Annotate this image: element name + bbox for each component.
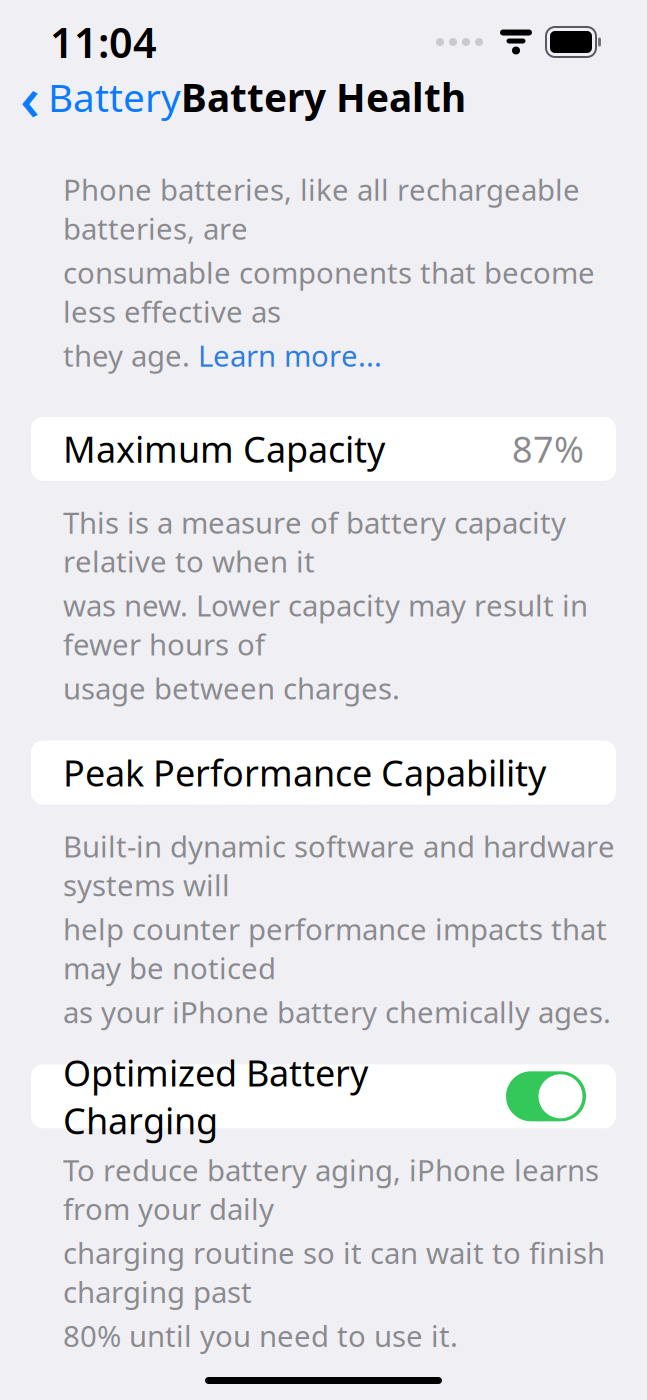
staticText: Maximum Capacity <box>63 425 385 473</box>
staticText: consumable components that become less e… <box>63 253 595 331</box>
staticText: 80% until you need to use it. <box>63 1316 458 1355</box>
button[interactable]: Peak Performance Capability <box>31 740 616 804</box>
button[interactable]: Maximum Capacity <box>31 417 616 481</box>
staticText: they age. <box>63 336 198 375</box>
staticText: Battery Health <box>181 71 466 123</box>
staticText: as your iPhone battery chemically ages. <box>63 992 611 1031</box>
staticText: Optimized Battery Charging <box>63 1048 368 1144</box>
staticText: Battery <box>48 71 181 123</box>
staticText: ‹ <box>20 56 40 138</box>
staticText: Peak Performance Capability <box>63 749 546 796</box>
button[interactable]: Optimized Battery Charging <box>31 1064 616 1128</box>
staticText: charging routine so it can wait to finis… <box>63 1233 605 1311</box>
staticText: 11:04 <box>50 15 157 69</box>
staticText: Phone batteries, like all rechargeable b… <box>63 170 580 248</box>
button[interactable]: ‹ <box>0 50 195 144</box>
staticText: 87% <box>512 425 584 473</box>
staticText: Built-in dynamic software and hardware s… <box>63 826 615 904</box>
staticText: To reduce battery aging, iPhone learns f… <box>63 1150 599 1228</box>
staticText: Learn more... <box>198 336 382 375</box>
staticText: help counter performance impacts that ma… <box>63 909 607 987</box>
button[interactable]: Learn more... <box>198 336 382 375</box>
staticText: This is a measure of battery capacity re… <box>63 503 566 581</box>
staticText: usage between charges. <box>63 669 400 708</box>
staticText: was new. Lower capacity may result in fe… <box>63 586 588 664</box>
